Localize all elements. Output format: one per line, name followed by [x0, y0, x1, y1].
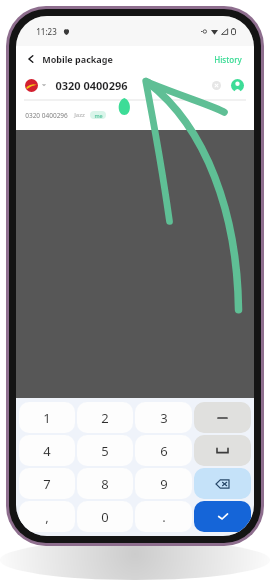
staticText: .	[162, 508, 166, 526]
staticText: 9	[160, 475, 168, 493]
staticText: 1	[43, 409, 51, 427]
button[interactable]: 3	[135, 402, 192, 433]
staticText: 5	[101, 442, 109, 460]
staticText: 0	[101, 508, 109, 526]
staticText: 7	[43, 475, 51, 493]
staticText: ,	[45, 508, 49, 526]
button[interactable]: Enter	[194, 501, 251, 532]
button[interactable]: 7	[19, 468, 75, 499]
staticText: me	[94, 112, 103, 119]
button[interactable]: Dash	[194, 402, 251, 433]
button[interactable]: 5	[77, 435, 133, 466]
button[interactable]: .	[135, 501, 192, 532]
staticText: 0320 0400296	[25, 111, 68, 120]
staticText: 4	[43, 442, 51, 460]
staticText: 6	[160, 442, 168, 460]
button[interactable]: ,	[19, 501, 75, 532]
staticText: 3	[160, 409, 168, 427]
staticText: 8	[101, 475, 109, 493]
button[interactable]: Contacts	[231, 79, 244, 92]
button[interactable]: Backspace	[194, 468, 251, 499]
button[interactable]: 0320 0400296	[16, 106, 254, 124]
button[interactable]: 0	[77, 501, 133, 532]
staticText: 11:23	[36, 26, 57, 37]
button[interactable]: 8	[77, 468, 133, 499]
button[interactable]: History	[202, 49, 254, 70]
button[interactable]: 2	[77, 402, 133, 433]
button[interactable]: 4	[19, 435, 75, 466]
button[interactable]: 6	[135, 435, 192, 466]
button[interactable]: Back	[16, 54, 40, 64]
staticText: 2	[101, 409, 109, 427]
staticText: 0320 0400296	[55, 78, 128, 93]
button[interactable]: Clear	[212, 81, 221, 90]
button[interactable]: 9	[135, 468, 192, 499]
staticText: History	[214, 54, 242, 65]
button[interactable]: Operator Jazz	[25, 79, 38, 92]
button[interactable]: 1	[19, 402, 75, 433]
button[interactable]: Space	[194, 435, 251, 466]
staticText: Jazz	[74, 111, 85, 119]
staticText: Mobile package	[42, 53, 113, 65]
